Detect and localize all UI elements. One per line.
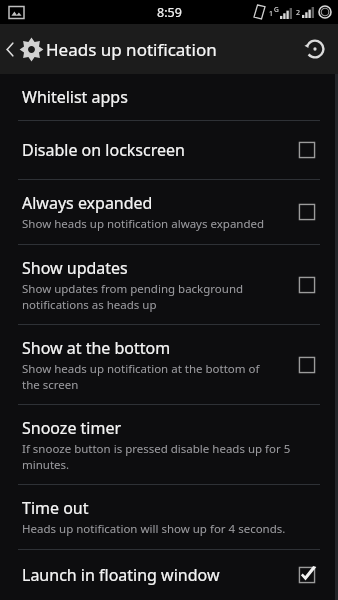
button[interactable]: Show at the bottom [290,348,324,382]
button[interactable]: Disable on lockscreen [0,121,338,179]
staticText: Show updates [22,257,128,279]
staticText: Show heads up notification always expand… [22,216,265,232]
staticText: G [274,5,279,14]
staticText: Show at the bottom [22,337,171,359]
button[interactable]: Always expanded [0,180,338,244]
staticText: If snooze button is pressed disable head… [22,441,310,472]
button[interactable]: Show updates [290,268,324,302]
staticText: Always expanded [22,192,153,214]
staticText: Show heads up notification at the bottom… [22,361,280,392]
staticText: Disable on lockscreen [22,139,185,161]
button[interactable]: Launch in floating window [290,562,324,588]
staticText: 2 [296,8,301,18]
button[interactable]: Navigate up [0,28,49,71]
staticText: Whitelist apps [22,86,128,108]
staticText: Launch in floating window [22,564,220,586]
button[interactable]: Show at the bottom [0,325,338,404]
button[interactable]: Whitelist apps [0,74,338,120]
button[interactable]: Disable on lockscreen [290,133,324,167]
button[interactable]: Time out [0,485,338,549]
staticText: Show updates from pending background not… [22,281,280,312]
button[interactable]: Snooze timer [0,405,338,484]
button[interactable]: Launch in floating window [0,550,338,600]
staticText: 1 [269,9,274,19]
button[interactable]: Show updates [0,245,338,324]
staticText: Heads up notification will show up for 4… [22,521,286,537]
button[interactable]: Reset to defaults [292,28,338,70]
staticText: Time out [22,497,89,519]
staticText: 8:59 [157,4,182,21]
staticText: Snooze timer [22,417,122,439]
staticText: Heads up notification [46,38,217,61]
button[interactable]: Always expanded [290,195,324,229]
